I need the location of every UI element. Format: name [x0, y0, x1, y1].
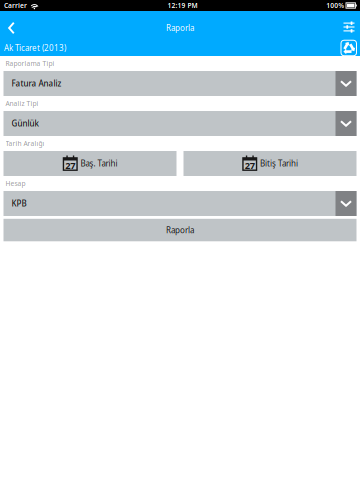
staticText: Bitiş Tarihi: [260, 158, 298, 169]
button[interactable]: Display options: [337, 11, 360, 40]
button[interactable]: Raporla: [3, 219, 356, 241]
staticText: Tarih Aralığı: [5, 139, 44, 148]
staticText: Raporlama Tipi: [5, 59, 54, 68]
staticText: Ak Ticaret (2013): [4, 43, 66, 53]
staticText: 100%: [326, 1, 344, 10]
button[interactable]: Günlük: [3, 111, 356, 136]
button[interactable]: KPB: [3, 191, 356, 216]
button[interactable]: Back: [0, 11, 23, 40]
button[interactable]: Fatura Analiz: [3, 71, 356, 96]
staticText: Raporla: [166, 225, 194, 235]
staticText: Raporla: [166, 23, 194, 33]
staticText: KPB: [11, 198, 26, 209]
staticText: Günlük: [11, 118, 38, 129]
staticText: 27: [245, 159, 255, 171]
button[interactable]: Refresh: [341, 40, 356, 56]
button[interactable]: 27: [183, 151, 356, 176]
staticText: Analiz Tipi: [5, 99, 38, 108]
staticText: Hesap: [5, 179, 25, 188]
staticText: Baş. Tarihi: [81, 158, 118, 169]
staticText: Fatura Analiz: [11, 78, 61, 89]
button[interactable]: 27: [3, 151, 176, 176]
staticText: 27: [65, 159, 75, 171]
staticText: Carrier: [4, 1, 27, 10]
staticText: 12:19 PM: [168, 1, 198, 10]
